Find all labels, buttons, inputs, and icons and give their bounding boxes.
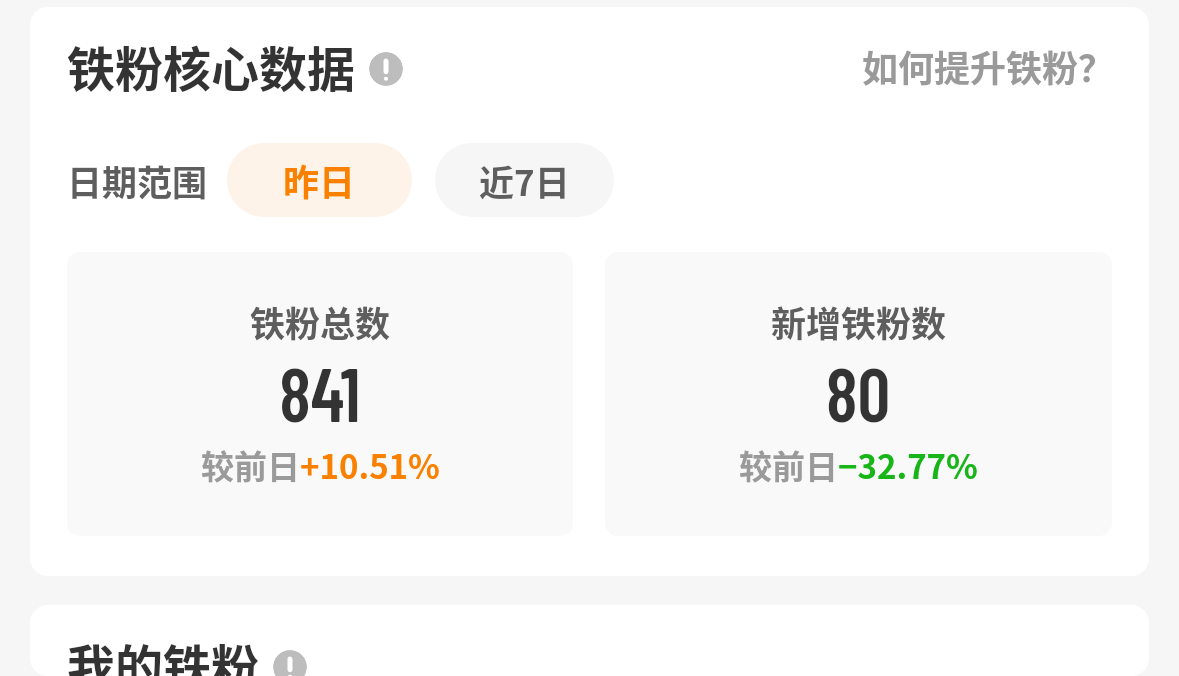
staticText: 较前日−32.77% [739, 441, 978, 489]
staticText: 80 [826, 347, 891, 437]
staticText: 我的铁粉 [67, 629, 260, 676]
button[interactable]: 昨日 [227, 143, 412, 217]
staticText: 铁粉核心数据 [67, 31, 356, 101]
staticText: 较前日+10.51% [201, 441, 440, 489]
staticText: 昨日 [283, 154, 356, 206]
button[interactable]: 铁粉核心数据说明 [369, 52, 403, 86]
button[interactable]: 近7日 [435, 143, 614, 217]
staticText: 近7日 [479, 155, 570, 206]
staticText: 如何提升铁粉？ [862, 40, 1115, 92]
staticText: 日期范围 [67, 155, 208, 206]
staticText: 新增铁粉数 [771, 296, 947, 347]
staticText: 841 [279, 347, 361, 437]
staticText: 铁粉总数 [250, 296, 391, 347]
button[interactable]: 如何提升铁粉？ [862, 40, 1115, 92]
button[interactable]: 我的铁粉说明 [273, 650, 307, 676]
button[interactable]: 铁粉总数 [67, 252, 573, 536]
button[interactable]: 新增铁粉数 [605, 252, 1112, 536]
